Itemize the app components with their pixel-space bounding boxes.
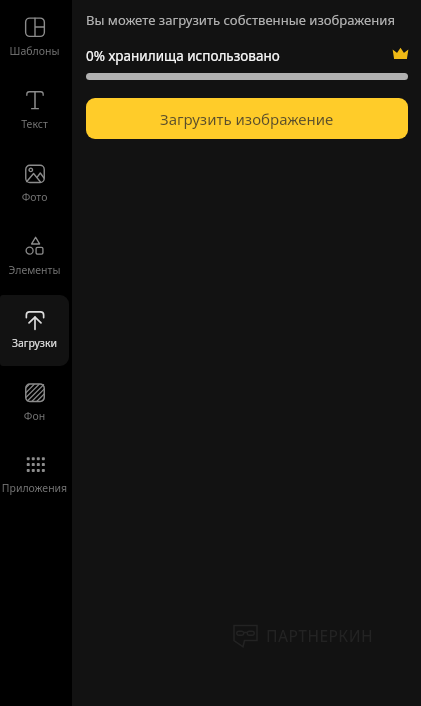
button[interactable]: Фото bbox=[0, 149, 69, 220]
staticText: Загрузки bbox=[0, 336, 69, 350]
staticText: Фон bbox=[0, 409, 69, 423]
button[interactable]: Элементы bbox=[0, 222, 69, 293]
staticText: ПАРТНЕРКИН bbox=[266, 625, 374, 646]
staticText: Вы можете загрузить собственные изображе… bbox=[86, 11, 395, 29]
staticText: Приложения bbox=[0, 481, 69, 495]
staticText: 0% хранилища использовано bbox=[86, 47, 280, 65]
staticText: Текст bbox=[0, 117, 69, 131]
staticText: Элементы bbox=[0, 263, 69, 277]
button[interactable]: Premium bbox=[392, 47, 408, 60]
staticText: Фото bbox=[0, 190, 69, 204]
button[interactable]: Приложения bbox=[0, 440, 69, 511]
button[interactable]: Текст bbox=[0, 76, 69, 147]
button[interactable]: Загрузки bbox=[0, 295, 69, 366]
staticText: Загрузить изображение bbox=[160, 109, 334, 129]
button[interactable]: Шаблоны bbox=[0, 3, 69, 74]
staticText: Шаблоны bbox=[0, 44, 69, 58]
button[interactable]: Загрузить изображение bbox=[86, 98, 408, 139]
button[interactable]: Фон bbox=[0, 368, 69, 439]
